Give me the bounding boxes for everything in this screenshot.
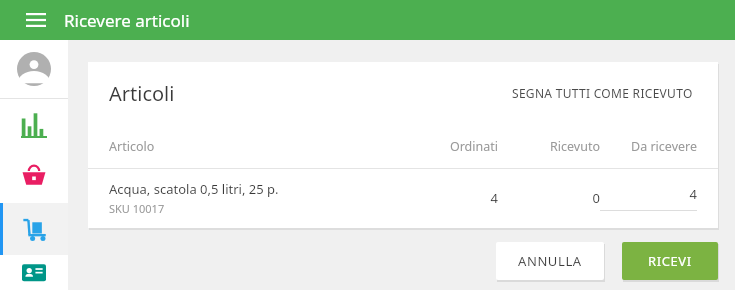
button[interactable]: ANNULLA [496, 242, 604, 280]
button[interactable]: Reports [0, 99, 68, 151]
button[interactable]: 4 [600, 185, 697, 211]
button[interactable]: RICEVI [622, 242, 718, 280]
staticText: Ricevuto [498, 138, 600, 155]
staticText: 4 [600, 185, 697, 203]
staticText: Ordinati [393, 138, 498, 155]
staticText: Articolo [109, 138, 393, 155]
staticText: ANNULLA [518, 252, 582, 270]
staticText: Da ricevere [600, 138, 697, 155]
button[interactable]: SEGNA TUTTI COME RICEVUTO [508, 81, 697, 105]
button[interactable]: Account [0, 40, 68, 98]
staticText: SKU 10017 [109, 201, 165, 216]
staticText: Articoli [109, 80, 175, 107]
button[interactable]: Acqua, scatola 0,5 litri, 25 p. [109, 169, 697, 227]
staticText: SEGNA TUTTI COME RICEVUTO [512, 85, 693, 101]
button[interactable]: Orders [0, 151, 68, 203]
staticText: 4 [393, 189, 498, 207]
staticText: RICEVI [648, 252, 692, 270]
button[interactable]: Contacts [0, 255, 68, 290]
button[interactable]: Receive items [0, 203, 68, 255]
staticText: Acqua, scatola 0,5 litri, 25 p. [109, 180, 279, 198]
staticText: 0 [498, 189, 600, 207]
staticText: Ricevere articoli [64, 9, 190, 32]
button[interactable]: Menu [16, 0, 56, 40]
